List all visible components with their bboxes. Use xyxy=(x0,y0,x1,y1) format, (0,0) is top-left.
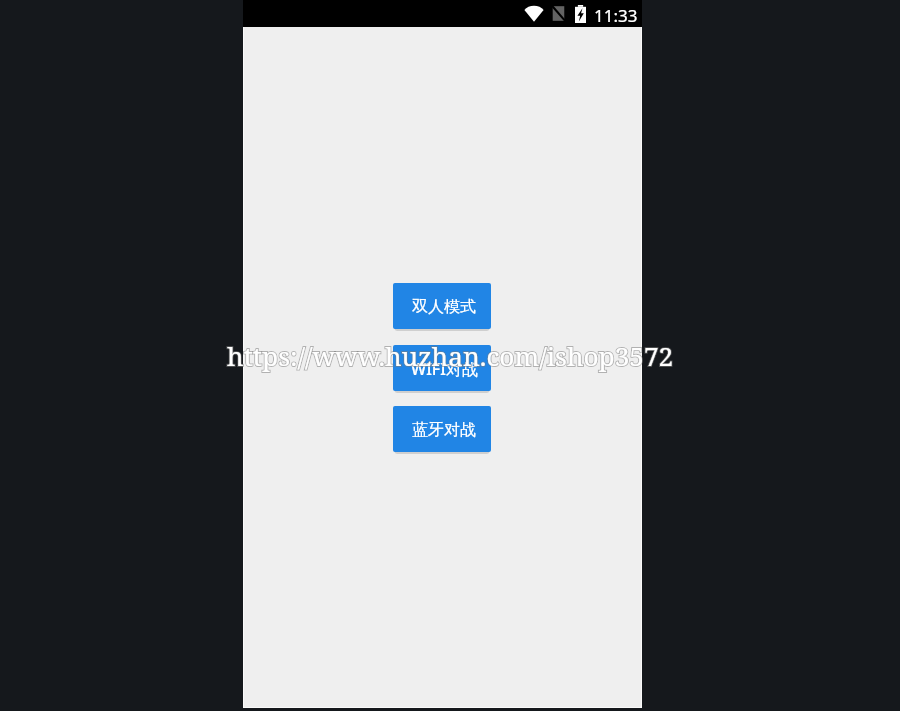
staticText: https://www.huzhan.com/ishop3572 xyxy=(227,338,674,374)
other: Wi-Fi connected xyxy=(524,5,544,22)
other: No SIM card xyxy=(551,5,568,22)
staticText: 11:33 xyxy=(594,4,638,27)
staticText: https://www.huzhan.com/ishop3572 xyxy=(227,338,674,374)
staticText: 蓝牙对战 xyxy=(412,420,476,440)
button[interactable]: 双人模式 xyxy=(393,283,491,329)
button[interactable]: 蓝牙对战 xyxy=(393,406,491,452)
button[interactable]: WIFI对战 xyxy=(393,345,491,391)
other: Battery charging xyxy=(575,5,586,23)
staticText: WIFI对战 xyxy=(411,358,478,380)
staticText: 双人模式 xyxy=(412,297,476,317)
